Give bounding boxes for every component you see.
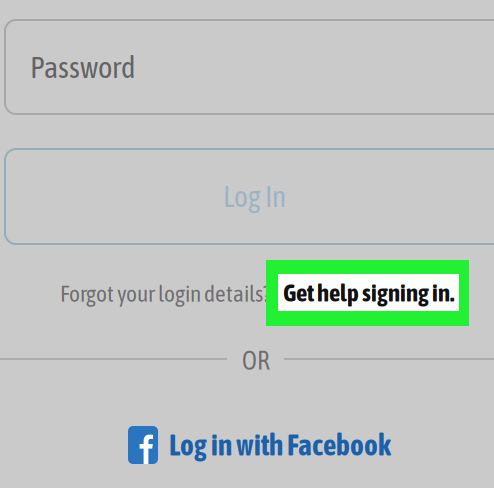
staticText: Password [30,49,136,84]
staticText: Get help signing in. [283,278,454,307]
staticText: Get help signing in. [274,279,445,308]
button[interactable]: Password [5,20,494,114]
staticText: OR [242,346,270,375]
button[interactable]: Log in with Facebook [128,426,391,464]
staticText: Log In [223,180,286,213]
staticText: Forgot your login details? [60,280,274,307]
button[interactable]: Forgot your login details? [60,279,445,308]
button[interactable]: Log In [5,149,494,244]
staticText: Log in with Facebook [169,428,391,462]
